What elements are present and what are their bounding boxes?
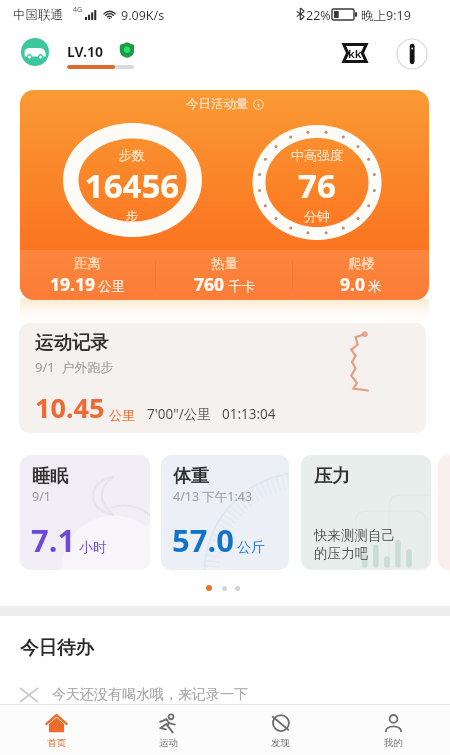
staticText: 中高强度 — [247, 147, 387, 163]
staticText: 9.09K/s — [121, 7, 165, 24]
staticText: 7.1 — [31, 519, 76, 561]
staticText: 热量 — [211, 255, 238, 272]
staticText: 22% — [306, 7, 331, 24]
staticText: 体重 — [173, 465, 209, 488]
staticText: 公里 — [98, 278, 125, 295]
staticText: 4G — [73, 5, 83, 15]
staticText: 步数 — [62, 147, 202, 163]
button[interactable]: 运动 — [112, 705, 224, 755]
staticText: 7'00"/公里 — [147, 405, 211, 423]
staticText: 的压力吧 — [314, 545, 368, 562]
staticText: 晚上9:19 — [361, 7, 411, 24]
staticText: 19.19 — [50, 272, 95, 296]
staticText: 9/1 — [32, 488, 51, 505]
staticText: 16456 — [62, 163, 202, 208]
staticText: 今天还没有喝水哦，来记录一下 — [52, 686, 248, 704]
staticText: 运动记录 — [35, 331, 109, 354]
staticText: 57.0 — [172, 519, 234, 561]
staticText: 米 — [368, 278, 382, 295]
staticText: 10.45 — [35, 389, 105, 426]
button[interactable]: 我的 — [337, 705, 450, 755]
staticText: 今日活动量 — [186, 96, 249, 112]
staticText: 公斤 — [237, 539, 265, 557]
staticText: 9/1 户外跑步 — [35, 358, 114, 376]
button[interactable]: 体重 — [161, 455, 289, 570]
staticText: 距离 — [74, 255, 101, 272]
button[interactable]: Device — [396, 38, 428, 70]
button[interactable]: 压力 — [301, 455, 431, 570]
staticText: 中国联通 — [13, 7, 63, 23]
staticText: 运动 — [159, 737, 178, 749]
button[interactable]: 今日活动量 — [20, 90, 429, 300]
staticText: 发现 — [271, 737, 290, 749]
staticText: 分钟 — [247, 208, 387, 224]
staticText: 今日待办 — [20, 636, 94, 659]
button[interactable]: 睡眠 — [20, 455, 150, 570]
staticText: 我的 — [384, 737, 403, 749]
staticText: 爬楼 — [348, 255, 375, 272]
staticText: 4/13 下午1:43 — [173, 488, 253, 505]
staticText: 小时 — [79, 539, 107, 557]
staticText: 步 — [62, 208, 202, 224]
staticText: kk — [348, 46, 362, 61]
staticText: 睡眠 — [32, 465, 68, 488]
staticText: LV.10 — [67, 42, 103, 61]
button[interactable]: KK — [336, 38, 374, 68]
staticText: 千卡 — [228, 278, 255, 295]
staticText: 快来测测自己 — [314, 527, 395, 544]
staticText: 760 — [194, 272, 225, 296]
button[interactable]: 运动记录 — [19, 323, 426, 433]
button[interactable]: Profile — [21, 38, 49, 66]
staticText: 01:13:04 — [222, 405, 276, 423]
staticText: 压力 — [314, 465, 350, 488]
staticText: 76 — [247, 163, 387, 208]
staticText: 9.0 — [340, 272, 365, 296]
button[interactable]: 首页 — [0, 705, 112, 755]
staticText: 首页 — [47, 737, 66, 749]
staticText: 公里 — [109, 407, 135, 423]
button[interactable]: 发现 — [224, 705, 337, 755]
